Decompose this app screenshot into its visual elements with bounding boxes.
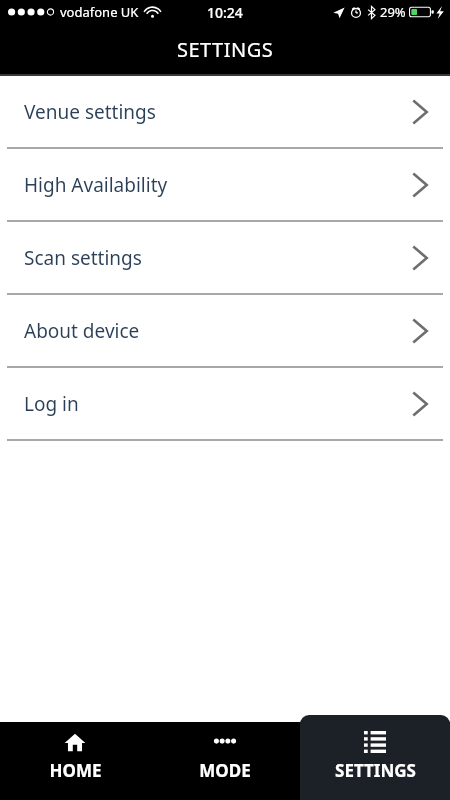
staticText: About device	[24, 318, 140, 344]
button[interactable]: Mode	[150, 710, 300, 800]
staticText: vodafone UK	[60, 3, 139, 21]
other: Settings	[364, 731, 386, 753]
staticText: MODE	[199, 759, 251, 782]
button[interactable]: High Availability	[0, 149, 450, 220]
staticText: SETTINGS	[177, 36, 274, 63]
staticText: Venue settings	[24, 99, 156, 125]
staticText: HOME	[49, 759, 102, 782]
staticText: High Availability	[24, 172, 168, 198]
staticText: Log in	[24, 391, 79, 417]
button[interactable]: Settings	[300, 715, 450, 800]
button[interactable]: About device	[0, 295, 450, 366]
other: Home	[64, 731, 86, 753]
button[interactable]: Scan settings	[0, 222, 450, 293]
button[interactable]: Venue settings	[0, 76, 450, 147]
other: Mode	[214, 731, 236, 753]
button[interactable]: Log in	[0, 368, 450, 439]
button[interactable]: Home	[0, 710, 150, 800]
staticText: 10:24	[207, 3, 243, 22]
staticText: Scan settings	[24, 245, 142, 271]
staticText: SETTINGS	[335, 759, 416, 782]
staticText: 29%	[380, 3, 406, 21]
